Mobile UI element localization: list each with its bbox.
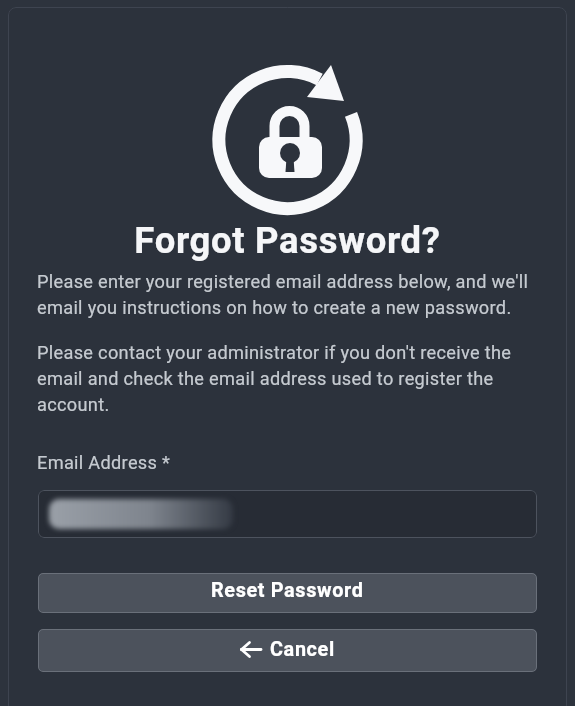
staticText: Please contact your administrator if you… [37, 342, 512, 415]
button[interactable]: Reset Password [38, 573, 537, 613]
staticText: Cancel [270, 638, 335, 661]
staticText: Reset Password [211, 579, 364, 602]
button[interactable]: Cancel [38, 629, 537, 672]
staticText: Forgot Password? [0, 219, 575, 262]
staticText: Email Address * [37, 452, 171, 473]
button[interactable] [38, 490, 537, 538]
staticText: Please enter your registered email addre… [37, 271, 529, 318]
